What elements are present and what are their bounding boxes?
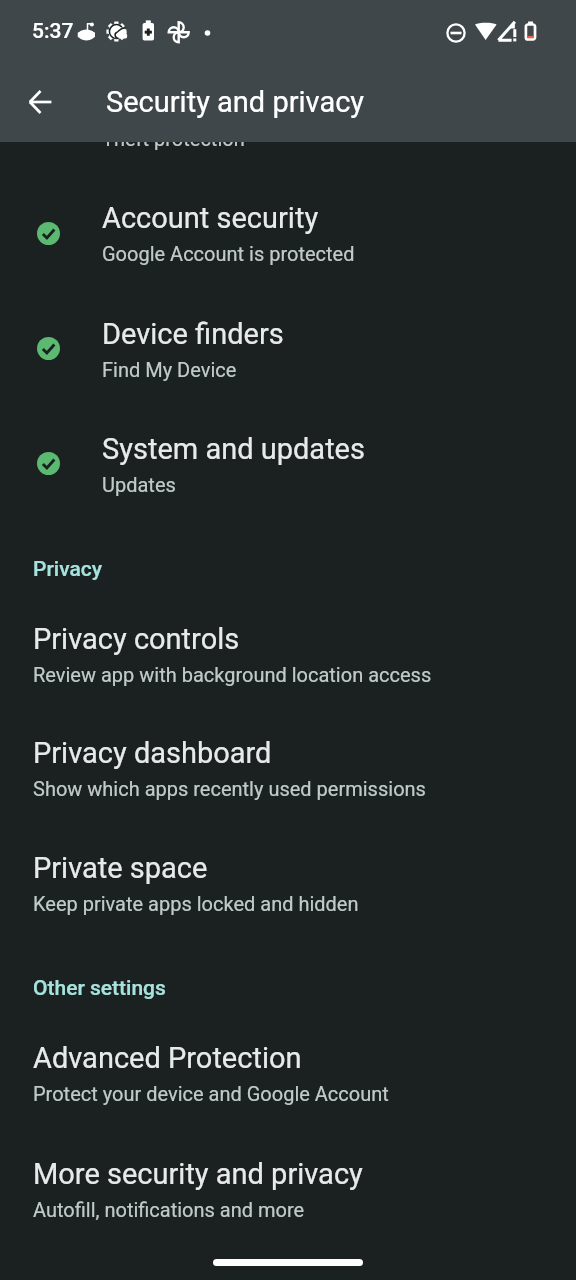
button[interactable]: Back xyxy=(12,74,68,130)
button[interactable] xyxy=(0,815,576,930)
staticText: Privacy dashboard xyxy=(33,736,272,770)
staticText: Updates xyxy=(102,473,176,496)
staticText: Autofill, notifications and more xyxy=(33,1198,305,1221)
button[interactable] xyxy=(0,165,576,280)
staticText: 5:37 xyxy=(32,19,74,44)
button[interactable] xyxy=(0,1121,576,1236)
staticText: Google Account is protected xyxy=(102,242,355,265)
staticText: Protect your device and Google Account xyxy=(33,1082,389,1105)
staticText: Other settings xyxy=(33,976,166,1001)
staticText: Advanced Protection xyxy=(33,1041,302,1075)
staticText: Account security xyxy=(102,201,319,235)
button[interactable] xyxy=(0,586,576,701)
button[interactable] xyxy=(0,396,576,511)
staticText: Privacy controls xyxy=(33,622,240,656)
staticText: Theft protection xyxy=(102,127,245,150)
staticText: Private space xyxy=(33,851,208,885)
staticText: Show which apps recently used permission… xyxy=(33,777,426,800)
staticText: Device finders xyxy=(102,317,284,351)
button[interactable] xyxy=(0,1005,576,1120)
staticText: System and updates xyxy=(102,432,365,466)
staticText: Review app with background location acce… xyxy=(33,663,432,686)
staticText: Theft protection xyxy=(102,86,309,120)
staticText: Find My Device xyxy=(102,358,237,381)
staticText: Security and privacy xyxy=(106,85,365,119)
button[interactable] xyxy=(0,700,576,815)
staticText: More security and privacy xyxy=(33,1157,363,1191)
staticText: Keep private apps locked and hidden xyxy=(33,892,359,915)
staticText: Privacy xyxy=(33,557,103,582)
button[interactable] xyxy=(0,281,576,396)
